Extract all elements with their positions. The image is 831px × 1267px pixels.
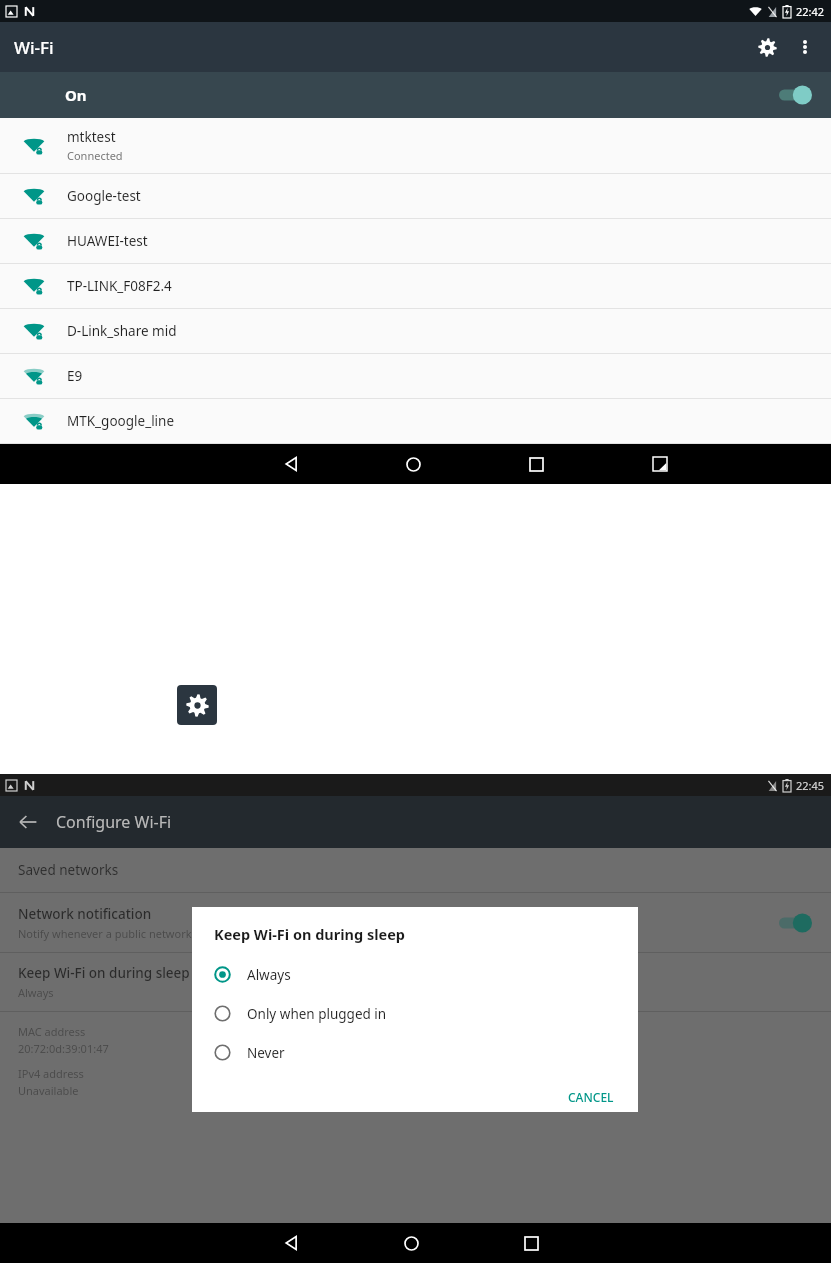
- button[interactable]: Back: [230, 1223, 351, 1263]
- staticText: 22:42: [796, 4, 825, 19]
- button[interactable]: Network notification: [0, 893, 831, 952]
- button[interactable]: Only when plugged in: [214, 994, 624, 1033]
- staticText: 22:45: [796, 778, 825, 793]
- button[interactable]: Settings: [747, 27, 787, 67]
- button[interactable]: Keep Wi-Fi on during sleep: [0, 953, 831, 1011]
- button[interactable]: MTK_google_line: [0, 399, 831, 443]
- staticText: MAC address: [18, 1024, 86, 1039]
- staticText: Keep Wi-Fi on during sleep: [18, 964, 190, 982]
- staticText: Always: [247, 966, 291, 984]
- button[interactable]: TP-LINK_F08F2.4: [0, 264, 831, 308]
- button[interactable]: Saved networks: [0, 848, 831, 892]
- staticText: Wi-Fi: [14, 36, 54, 59]
- staticText: Notify whenever a public network is avai…: [18, 926, 251, 941]
- staticText: E9: [67, 367, 83, 385]
- button[interactable]: Always: [214, 955, 624, 994]
- staticText: TP-LINK_F08F2.4: [67, 277, 172, 295]
- staticText: Connected: [67, 148, 123, 163]
- staticText: Google-test: [67, 187, 141, 205]
- button[interactable]: Never: [214, 1033, 624, 1072]
- staticText: Configure Wi-Fi: [56, 811, 172, 833]
- staticText: HUAWEI-test: [67, 232, 148, 250]
- button[interactable]: Back: [230, 444, 352, 484]
- staticText: 20:72:0d:39:01:47: [18, 1041, 109, 1056]
- staticText: Always: [18, 985, 54, 1000]
- button[interactable]: Screenshot: [598, 444, 721, 484]
- button[interactable]: Home: [352, 444, 475, 484]
- staticText: CANCEL: [568, 1089, 614, 1105]
- staticText: Never: [247, 1044, 285, 1062]
- button[interactable]: Google-test: [0, 174, 831, 218]
- button[interactable]: HUAWEI-test: [0, 219, 831, 263]
- staticText: MTK_google_line: [67, 412, 175, 430]
- button[interactable]: E9: [0, 354, 831, 398]
- button[interactable]: D-Link_share mid: [0, 309, 831, 353]
- button[interactable]: More options: [787, 29, 823, 65]
- button[interactable]: Settings: [177, 685, 217, 725]
- button[interactable]: Recents: [471, 1223, 591, 1263]
- staticText: Unavailable: [18, 1083, 79, 1098]
- staticText: Network notification: [18, 905, 152, 923]
- staticText: On: [65, 85, 87, 105]
- staticText: Only when plugged in: [247, 1005, 387, 1023]
- staticText: Saved networks: [18, 861, 119, 879]
- button[interactable]: Recents: [475, 444, 598, 484]
- staticText: IPv4 address: [18, 1066, 84, 1081]
- button[interactable]: On: [0, 72, 831, 118]
- staticText: D-Link_share mid: [67, 322, 177, 340]
- button[interactable]: Back: [0, 796, 56, 848]
- staticText: mtktest: [67, 128, 116, 146]
- button[interactable]: Home: [351, 1223, 471, 1263]
- staticText: Keep Wi-Fi on during sleep: [214, 924, 406, 944]
- button[interactable]: mtktest: [0, 118, 831, 173]
- button[interactable]: CANCEL: [558, 1082, 624, 1112]
